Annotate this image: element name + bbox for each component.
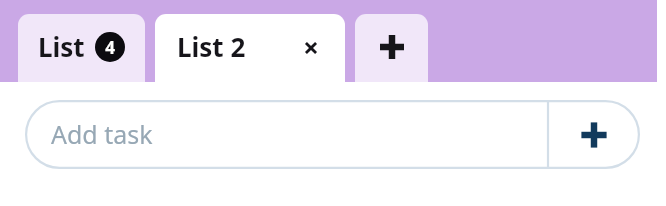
button[interactable]: Add list [355, 14, 428, 82]
button[interactable]: Close list [289, 26, 333, 70]
button[interactable]: List [18, 14, 145, 82]
staticText: List 2 [177, 29, 246, 64]
button[interactable]: List 2 [155, 14, 345, 82]
staticText: List [38, 29, 85, 64]
staticText: Add task [51, 117, 153, 151]
staticText: 4 [105, 36, 115, 59]
button[interactable]: Add task [548, 100, 640, 169]
button[interactable]: Add task [25, 100, 548, 169]
